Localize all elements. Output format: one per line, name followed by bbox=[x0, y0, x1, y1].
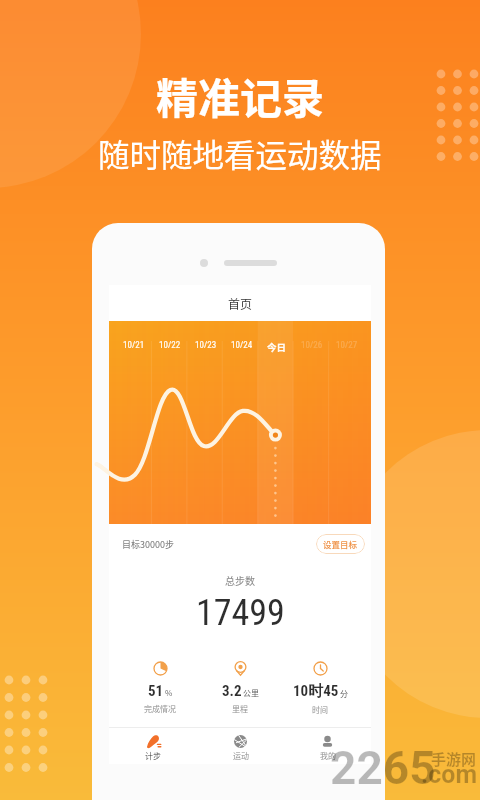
staticText: 首页 bbox=[228, 295, 253, 312]
staticText: 17499 bbox=[196, 592, 285, 634]
staticText: 今日 bbox=[267, 340, 287, 354]
staticText: 公里 bbox=[243, 687, 259, 699]
staticText: 10/26 bbox=[301, 340, 323, 351]
staticText: 设置目标 bbox=[323, 538, 358, 550]
staticText: .com bbox=[421, 760, 478, 789]
staticText: 时间 bbox=[312, 704, 328, 716]
staticText: 总步数 bbox=[225, 573, 255, 587]
staticText: 里程 bbox=[232, 703, 248, 715]
staticText: 51 bbox=[148, 682, 164, 700]
staticText: 10/22 bbox=[159, 340, 181, 351]
staticText: 3.2 bbox=[222, 682, 242, 700]
staticText: 10/23 bbox=[195, 340, 217, 351]
staticText: 运动 bbox=[233, 750, 249, 762]
button[interactable]: 10时45 bbox=[280, 661, 360, 716]
button[interactable]: 我的 bbox=[284, 728, 371, 764]
staticText: 我的 bbox=[320, 750, 336, 762]
staticText: 10/21 bbox=[123, 340, 145, 351]
staticText: % bbox=[165, 687, 173, 699]
staticText: 随时随地看运动数据 bbox=[98, 130, 382, 176]
staticText: 手游网 bbox=[431, 748, 477, 770]
staticText: 精准记录 bbox=[156, 65, 325, 126]
staticText: 10/27 bbox=[336, 340, 358, 351]
staticText: 10/24 bbox=[231, 340, 253, 351]
staticText: 完成情况 bbox=[144, 703, 176, 715]
staticText: 计步 bbox=[145, 750, 161, 762]
button[interactable]: 51 bbox=[120, 661, 200, 715]
staticText: 分 bbox=[340, 688, 348, 700]
button[interactable]: 首页 bbox=[109, 285, 371, 321]
button[interactable]: 计步 bbox=[109, 728, 197, 764]
button[interactable]: 3.2 bbox=[200, 661, 280, 715]
button[interactable]: 运动 bbox=[197, 728, 284, 764]
staticText: 目标30000步 bbox=[122, 538, 174, 551]
staticText: 10时45 bbox=[293, 682, 339, 701]
staticText: 2265 bbox=[330, 741, 436, 795]
button[interactable]: 设置目标 bbox=[316, 534, 365, 554]
